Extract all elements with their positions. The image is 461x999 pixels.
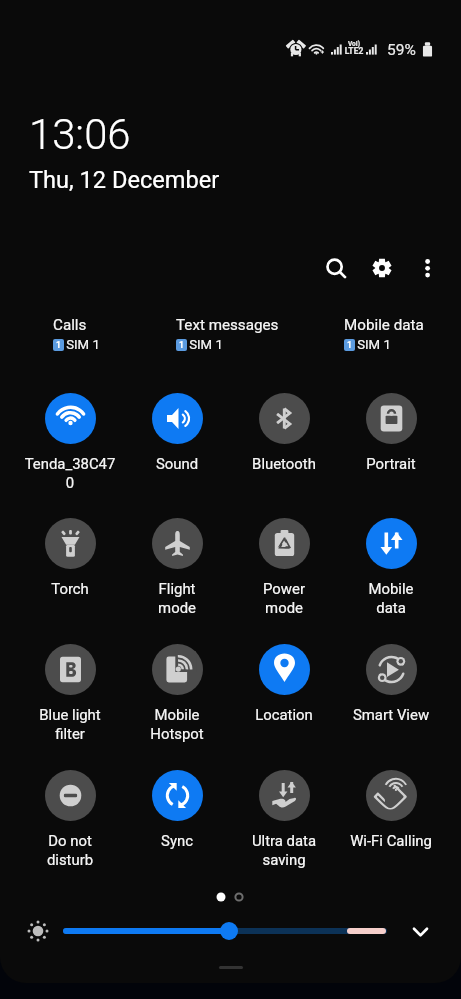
button[interactable]: Calls xyxy=(53,316,100,352)
button[interactable]: Torch xyxy=(15,518,125,628)
staticText: Sync xyxy=(122,832,232,849)
button[interactable]: Do not disturb xyxy=(15,770,125,880)
button[interactable]: Sync xyxy=(122,770,232,880)
staticText: Flight mode xyxy=(122,580,232,616)
button[interactable]: Power mode xyxy=(229,518,339,628)
staticText: VoI) xyxy=(344,40,364,48)
staticText: SIM 1 xyxy=(189,337,223,352)
button[interactable]: Flight mode xyxy=(122,518,232,628)
staticText: Do not disturb xyxy=(15,832,125,868)
staticText: 1 xyxy=(347,340,352,350)
staticText: Text messages xyxy=(176,316,279,334)
staticText: 1 xyxy=(56,340,61,350)
staticText: Location xyxy=(229,706,339,723)
button[interactable]: More options xyxy=(406,245,450,289)
staticText: Mobile Hotspot xyxy=(122,706,232,742)
button[interactable]: Wi-Fi Calling xyxy=(336,770,446,880)
staticText: Smart View xyxy=(336,706,446,723)
button[interactable]: Mobile data xyxy=(336,518,446,628)
button[interactable]: Ultra data saving xyxy=(229,770,339,880)
staticText: 13:06 xyxy=(29,110,131,159)
staticText: Blue light filter xyxy=(15,706,125,742)
button[interactable]: Brightness xyxy=(0,905,461,957)
staticText: Torch xyxy=(15,580,125,597)
staticText: Bluetooth xyxy=(229,455,339,472)
staticText: Portrait xyxy=(336,455,446,472)
button[interactable]: Location xyxy=(229,644,339,754)
staticText: Power mode xyxy=(229,580,339,616)
staticText: SIM 1 xyxy=(357,337,391,352)
button[interactable]: Search xyxy=(313,245,357,289)
staticText: Tenda_38C47 0 xyxy=(15,455,125,491)
button[interactable]: Tenda_38C47 0 xyxy=(15,393,125,503)
staticText: LTE2 xyxy=(344,46,364,56)
button[interactable]: Bluetooth xyxy=(229,393,339,503)
staticText: Ultra data saving xyxy=(229,832,339,868)
button[interactable]: Mobile data xyxy=(344,316,424,352)
staticText: Calls xyxy=(53,316,87,334)
staticText: 59% xyxy=(387,41,419,59)
staticText: SIM 1 xyxy=(66,337,100,352)
staticText: Wi-Fi Calling xyxy=(336,832,446,849)
button[interactable]: Text messages xyxy=(176,316,279,352)
button[interactable]: Expand xyxy=(400,910,444,954)
staticText: Thu, 12 December xyxy=(29,166,220,194)
staticText: 1 xyxy=(179,340,184,350)
staticText: Mobile data xyxy=(336,580,446,616)
staticText: Sound xyxy=(122,455,232,472)
button[interactable]: Blue light filter xyxy=(15,644,125,754)
button[interactable]: Settings xyxy=(360,245,404,289)
button[interactable]: Portrait xyxy=(336,393,446,503)
button[interactable]: Sound xyxy=(122,393,232,503)
staticText: Mobile data xyxy=(344,316,424,334)
button[interactable]: Mobile Hotspot xyxy=(122,644,232,754)
button[interactable]: Smart View xyxy=(336,644,446,754)
